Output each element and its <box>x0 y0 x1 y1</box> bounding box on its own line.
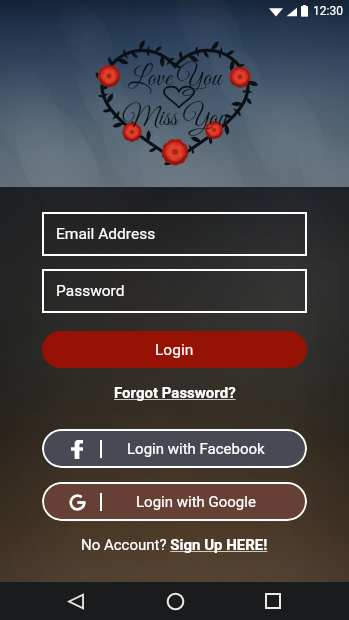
button[interactable]: No Account? Sign Up HERE! <box>75 534 274 556</box>
staticText: Email Address <box>56 225 156 243</box>
button[interactable]: Forgot Password? <box>108 382 242 404</box>
staticText: 12:30 <box>313 4 343 18</box>
staticText: Miss You <box>122 102 228 136</box>
staticText: Forgot Password? <box>114 384 236 402</box>
staticText: No Account? Sign Up HERE! <box>81 536 268 554</box>
button[interactable]: Email Address <box>42 212 307 256</box>
button[interactable]: Home <box>153 582 197 620</box>
staticText: Login <box>155 341 194 359</box>
button[interactable]: Recent apps <box>251 582 295 620</box>
button[interactable]: Back <box>54 582 98 620</box>
staticText: Login with Google <box>136 493 256 511</box>
button[interactable]: Login with Facebook <box>42 429 307 468</box>
button[interactable]: Login <box>42 331 307 368</box>
button[interactable]: Password <box>42 269 307 313</box>
staticText: Love You <box>128 62 222 96</box>
staticText: Login with Facebook <box>127 440 265 458</box>
button[interactable]: Login with Google <box>42 482 307 521</box>
staticText: Password <box>56 282 125 300</box>
